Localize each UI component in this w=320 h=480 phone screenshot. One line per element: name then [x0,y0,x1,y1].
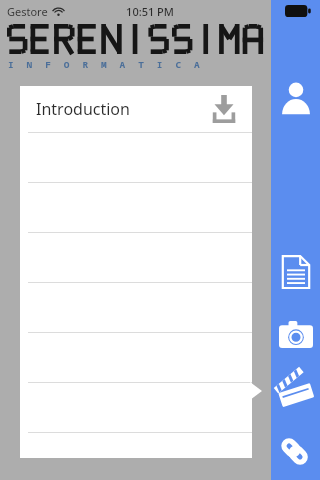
button[interactable]: Download [208,93,240,125]
staticText: Introduction [36,98,130,120]
staticText: 10:51 PM [126,4,174,19]
button[interactable]: Camera [274,312,318,356]
button[interactable]: Introduction [20,86,252,132]
staticText: Gestore [7,4,48,19]
staticText: I N F O R M A T I C A [8,58,204,71]
button[interactable]: Links [273,426,319,472]
button[interactable]: Profile [274,76,318,120]
button[interactable]: Documents [274,250,318,294]
button[interactable]: Video [273,368,319,414]
